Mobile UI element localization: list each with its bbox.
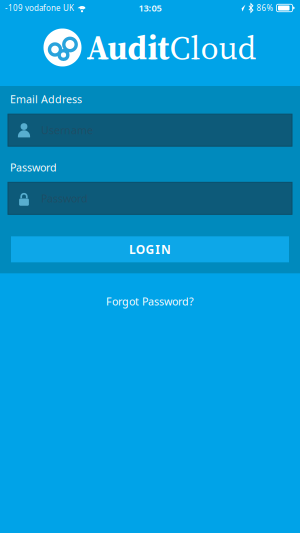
staticText: -109 vodafone UK xyxy=(5,3,74,13)
staticText: Forgot Password? xyxy=(106,294,194,308)
staticText: Cloud xyxy=(169,25,256,70)
button[interactable]: Forgot Password? xyxy=(106,294,194,308)
staticText: LOGIN xyxy=(129,241,171,257)
button[interactable]: Password xyxy=(8,182,292,214)
staticText: Password xyxy=(41,191,88,205)
staticText: Username xyxy=(41,123,93,137)
staticText: Email Address xyxy=(10,92,82,106)
button[interactable]: Username xyxy=(8,114,292,146)
staticText: Audit xyxy=(86,25,169,70)
staticText: 86% xyxy=(256,3,273,13)
button[interactable]: LOGIN xyxy=(11,236,289,262)
staticText: Password xyxy=(10,160,57,174)
staticText: 13:05 xyxy=(138,2,161,14)
